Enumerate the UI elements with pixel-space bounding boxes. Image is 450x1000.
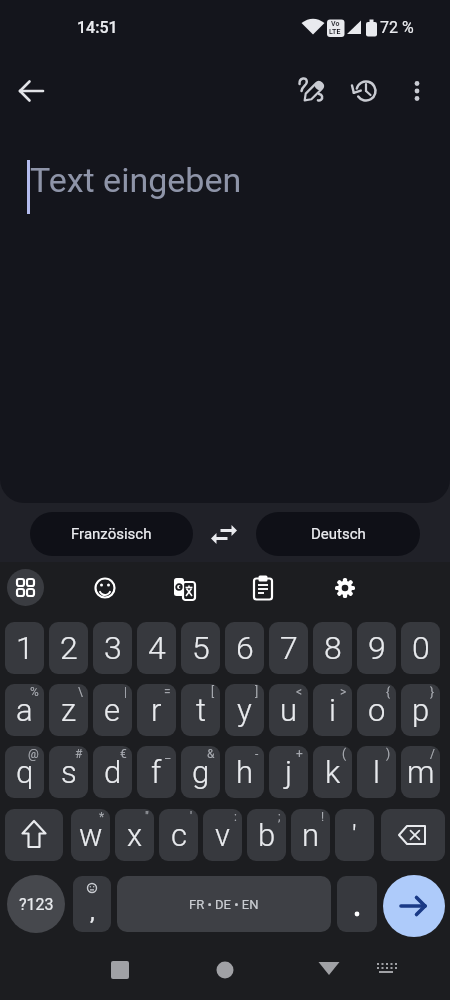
button[interactable] xyxy=(368,952,404,988)
button[interactable]: p xyxy=(401,684,440,736)
staticText: b xyxy=(258,817,276,853)
button[interactable]: n xyxy=(291,809,330,861)
staticText: @ xyxy=(28,747,39,761)
button[interactable]: 1 xyxy=(5,622,44,674)
staticText: z xyxy=(61,692,77,728)
staticText: d xyxy=(104,754,122,790)
button[interactable]: Deutsch xyxy=(256,512,420,556)
button[interactable] xyxy=(396,70,438,112)
staticText: v xyxy=(215,817,230,853)
button[interactable]: x xyxy=(115,809,154,861)
button[interactable]: s xyxy=(49,746,88,798)
button[interactable]: k xyxy=(313,746,352,798)
button[interactable]: 6 xyxy=(225,622,264,674)
button[interactable]: o xyxy=(357,684,396,736)
button[interactable]: 7 xyxy=(269,622,308,674)
button[interactable] xyxy=(7,569,44,606)
staticText: * xyxy=(99,810,105,824)
button[interactable]: m xyxy=(401,746,440,798)
staticText: Vo xyxy=(331,20,340,28)
button[interactable]: u xyxy=(269,684,308,736)
staticText: g xyxy=(192,754,210,790)
button[interactable] xyxy=(5,809,63,861)
staticText: < xyxy=(296,685,303,699)
button[interactable]: 0 xyxy=(401,622,440,674)
button[interactable] xyxy=(311,952,347,988)
staticText: t xyxy=(196,692,206,728)
button[interactable] xyxy=(345,70,387,112)
staticText: > xyxy=(340,685,347,699)
button[interactable]: t xyxy=(181,684,220,736)
staticText: x xyxy=(127,817,143,853)
button[interactable] xyxy=(207,952,243,988)
staticText: m xyxy=(407,754,435,790)
button[interactable]: 4 xyxy=(137,622,176,674)
button[interactable]: FR • DE • EN xyxy=(117,876,331,932)
staticText: : xyxy=(234,810,237,824)
button[interactable]: Französisch xyxy=(30,512,193,556)
button[interactable]: g xyxy=(181,746,220,798)
button[interactable] xyxy=(381,809,445,861)
staticText: & xyxy=(207,747,215,761)
button[interactable] xyxy=(290,70,332,112)
button[interactable]: h xyxy=(225,746,264,798)
button[interactable] xyxy=(10,70,52,112)
button[interactable]: b xyxy=(247,809,286,861)
button[interactable]: j xyxy=(269,746,308,798)
button[interactable]: f xyxy=(137,746,176,798)
button[interactable]: i xyxy=(313,684,352,736)
button[interactable]: , xyxy=(73,876,111,932)
button[interactable]: 5 xyxy=(181,622,220,674)
staticText: ' xyxy=(190,810,193,824)
button[interactable]: y xyxy=(225,684,264,736)
staticText: ' xyxy=(352,819,357,852)
staticText: % xyxy=(30,685,39,699)
staticText: u xyxy=(280,692,298,728)
staticText: FR • DE • EN xyxy=(189,897,259,912)
staticText: € xyxy=(120,747,127,761)
button[interactable]: e xyxy=(93,684,132,736)
button[interactable] xyxy=(327,570,363,606)
staticText: p xyxy=(412,692,430,728)
staticText: \ xyxy=(78,685,83,699)
staticText: / xyxy=(430,747,435,761)
staticText: c xyxy=(171,817,187,853)
button[interactable] xyxy=(102,952,138,988)
staticText: 9 xyxy=(368,629,386,667)
staticText: j xyxy=(285,754,293,790)
button[interactable] xyxy=(337,876,377,932)
staticText: [ xyxy=(211,685,215,699)
button[interactable]: q xyxy=(5,746,44,798)
button[interactable]: z xyxy=(49,684,88,736)
button[interactable] xyxy=(206,516,242,552)
button[interactable]: a xyxy=(5,684,44,736)
staticText: Deutsch xyxy=(311,525,366,543)
button[interactable]: 3 xyxy=(93,622,132,674)
button[interactable]: r xyxy=(137,684,176,736)
button[interactable] xyxy=(167,570,203,606)
button[interactable]: d xyxy=(93,746,132,798)
button[interactable] xyxy=(245,570,281,606)
button[interactable] xyxy=(87,570,123,606)
button[interactable] xyxy=(383,875,445,937)
staticText: e xyxy=(104,692,121,728)
staticText: { xyxy=(386,685,391,699)
staticText: 4 xyxy=(148,629,166,667)
button[interactable]: 2 xyxy=(49,622,88,674)
button[interactable]: w xyxy=(71,809,110,861)
staticText: o xyxy=(368,692,386,728)
staticText: # xyxy=(75,747,83,761)
staticText: a xyxy=(16,692,33,728)
staticText: y xyxy=(237,692,252,728)
button[interactable]: 9 xyxy=(357,622,396,674)
button[interactable]: ?123 xyxy=(7,875,65,933)
staticText: r xyxy=(151,692,162,728)
button[interactable]: ' xyxy=(335,809,374,861)
staticText: } xyxy=(430,685,435,699)
button[interactable]: l xyxy=(357,746,396,798)
button[interactable]: 8 xyxy=(313,622,352,674)
staticText: 8 xyxy=(324,629,342,667)
button[interactable]: v xyxy=(203,809,242,861)
button[interactable]: c xyxy=(159,809,198,861)
staticText: k xyxy=(325,754,341,790)
